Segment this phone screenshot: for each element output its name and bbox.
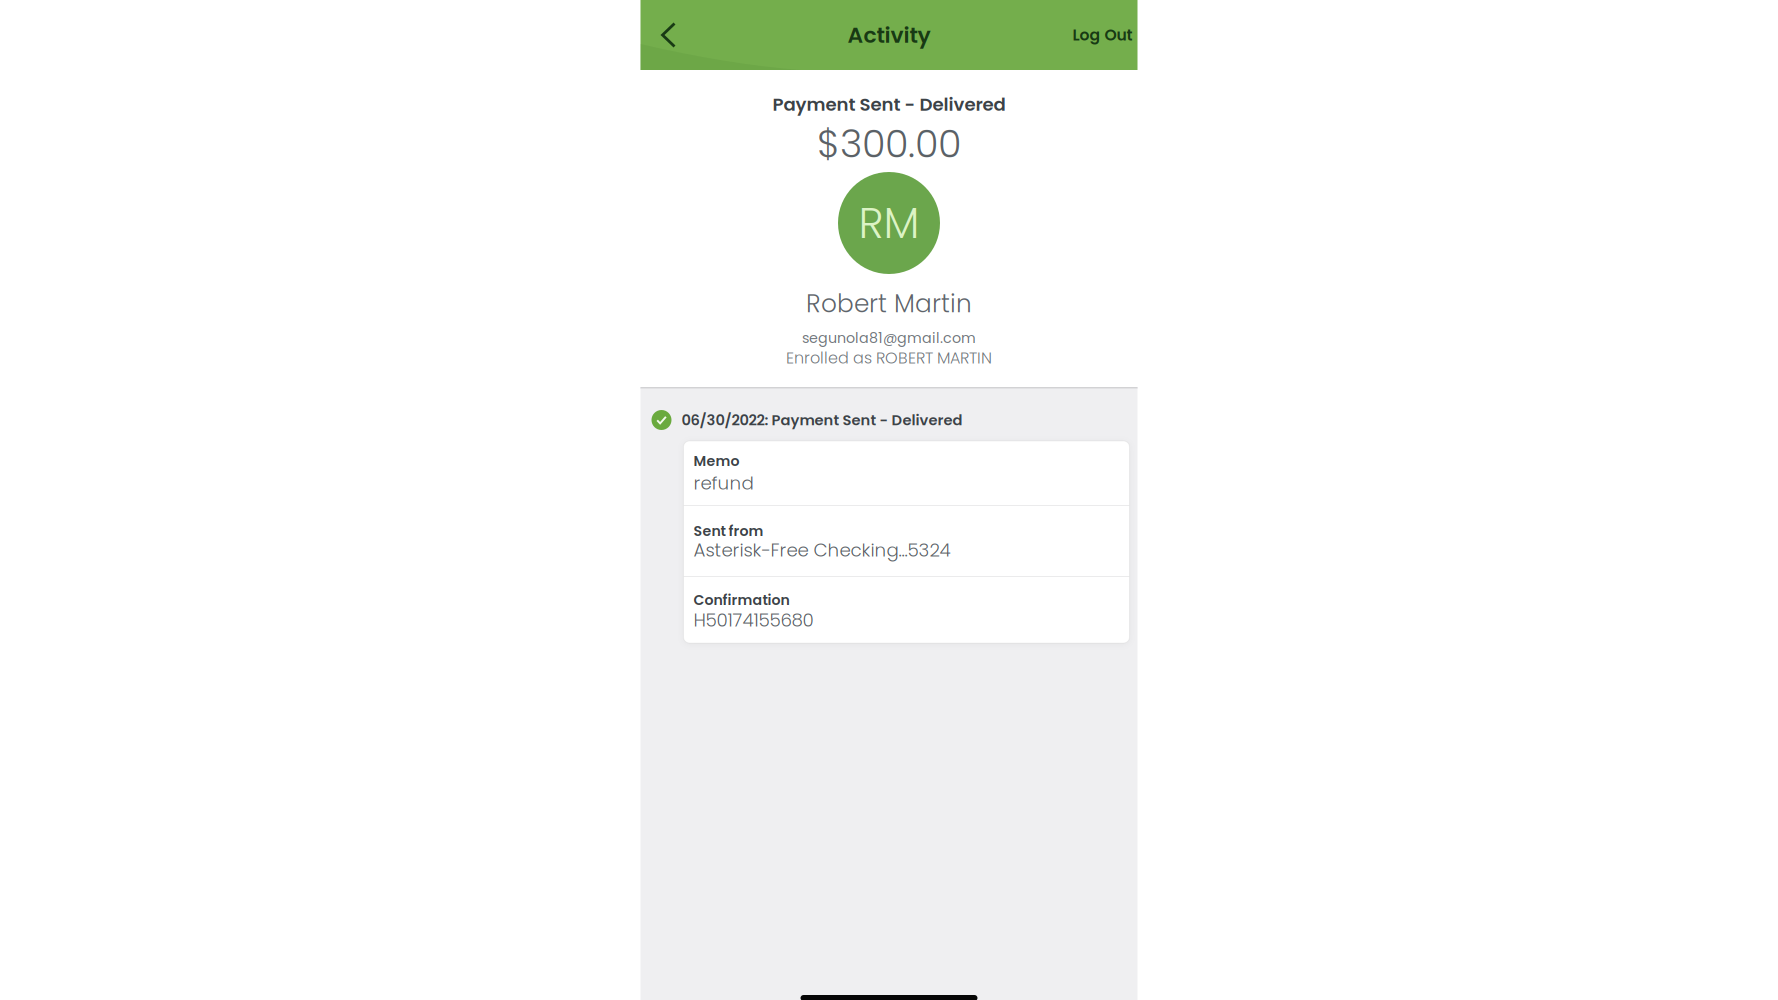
staticText: Sent from <box>693 521 763 541</box>
staticText: RM <box>858 193 919 253</box>
staticText: Log Out <box>1072 24 1132 46</box>
staticText: Payment Sent - Delivered <box>772 92 1005 117</box>
staticText: Confirmation <box>693 590 789 610</box>
staticText: Asterisk-Free Checking...5324 <box>693 537 950 563</box>
staticText: H50174155680 <box>693 607 813 633</box>
button[interactable]: Back <box>640 0 760 70</box>
staticText: Memo <box>693 451 739 471</box>
staticText: Robert Martin <box>806 286 972 321</box>
staticText: Enrolled as ROBERT MARTIN <box>786 347 992 369</box>
staticText: Activity <box>847 20 930 50</box>
staticText: $300.00 <box>817 117 961 171</box>
staticText: segunola81@gmail.com <box>802 328 976 348</box>
staticText: 06/30/2022: Payment Sent - Delivered <box>681 410 962 430</box>
staticText: refund <box>693 470 753 496</box>
button[interactable]: Log Out <box>1017 0 1137 70</box>
